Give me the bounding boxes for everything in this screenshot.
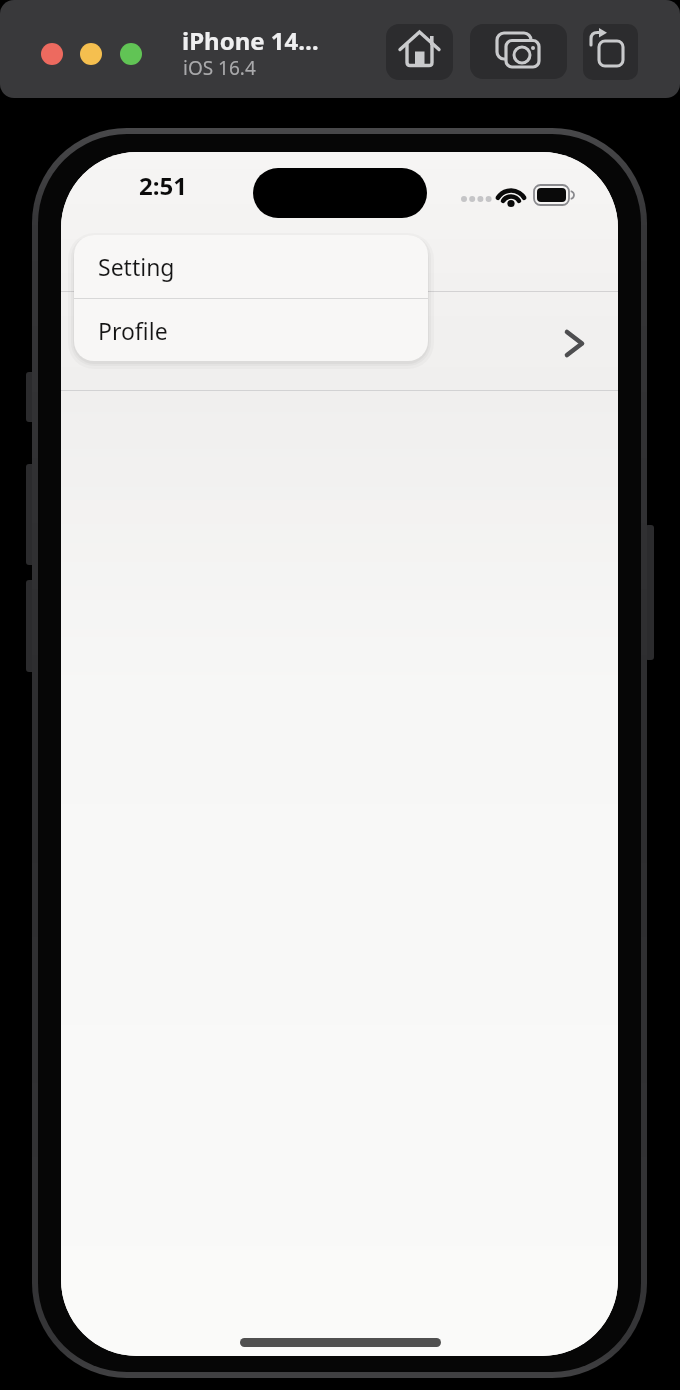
button[interactable]: Setting: [74, 235, 428, 298]
button[interactable]: [583, 24, 638, 80]
button[interactable]: Profile: [74, 299, 428, 361]
staticText: Setting: [98, 251, 175, 282]
staticText: iPhone 14…: [182, 24, 319, 57]
button[interactable]: [80, 43, 102, 65]
staticText: 2:51: [139, 169, 187, 202]
button[interactable]: [120, 43, 142, 65]
button[interactable]: [386, 24, 453, 80]
staticText: iOS 16.4: [183, 55, 256, 81]
staticText: Profile: [98, 315, 168, 346]
button[interactable]: [470, 24, 567, 79]
button[interactable]: [41, 43, 63, 65]
